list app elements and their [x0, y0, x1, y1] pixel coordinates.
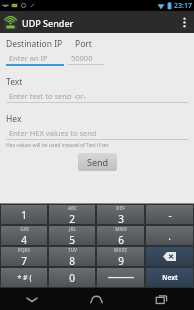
staticText: .	[168, 229, 171, 243]
staticText: WXYZ	[114, 247, 127, 253]
staticText: JKL	[69, 226, 76, 232]
button[interactable]: * # (	[1, 268, 47, 287]
button[interactable]: Send	[78, 153, 117, 171]
staticText: 1	[21, 208, 27, 222]
staticText: GHI	[20, 226, 29, 232]
staticText: Port	[75, 38, 92, 50]
button[interactable]: Home	[64, 288, 129, 310]
staticText: 9	[118, 254, 124, 266]
button[interactable]: Enter HEX values to send	[6, 127, 188, 140]
staticText: 23:17	[174, 1, 192, 11]
button[interactable]: 50000	[68, 52, 104, 65]
staticText: 0	[69, 271, 75, 285]
button[interactable]: WXYZ	[97, 247, 144, 266]
staticText: Hex values will be used instead of Text …	[6, 142, 109, 149]
staticText: 7	[21, 254, 27, 266]
staticText: TUV	[68, 247, 77, 253]
staticText: Next	[162, 273, 178, 282]
button[interactable]: More options	[174, 12, 194, 32]
button[interactable]: Enter text to send -or-	[6, 90, 188, 103]
button[interactable]: TUV	[49, 247, 95, 266]
button[interactable]: GHI	[1, 226, 47, 245]
button[interactable]: -	[146, 205, 193, 224]
button[interactable]: Space	[97, 268, 144, 287]
button[interactable]: ABC	[49, 205, 95, 224]
staticText: 3	[118, 212, 124, 224]
staticText: MNO	[115, 226, 127, 232]
button[interactable]: Hide keyboard	[0, 288, 64, 310]
staticText: Destination IP	[6, 38, 63, 50]
staticText: Send	[87, 156, 109, 168]
button[interactable]: .	[146, 226, 193, 245]
button[interactable]: 1	[1, 205, 47, 224]
button[interactable]: Recent apps	[129, 288, 194, 310]
button[interactable]: PQRS	[1, 247, 47, 266]
button[interactable]: 0	[49, 268, 95, 287]
staticText: ABC	[68, 205, 77, 211]
staticText: Enter HEX values to send	[9, 128, 97, 138]
staticText: PQRS	[18, 247, 30, 253]
button[interactable]: DEF	[97, 205, 144, 224]
staticText: Enter text to send -or-	[9, 91, 86, 101]
button[interactable]: MNO	[97, 226, 144, 245]
staticText: * # (	[17, 273, 32, 283]
staticText: Hex	[6, 113, 22, 125]
button[interactable]: Enter an IP	[6, 52, 64, 66]
staticText: Text	[6, 76, 23, 88]
button[interactable]: Next	[146, 268, 193, 287]
staticText: 6	[118, 233, 124, 245]
staticText: 8	[69, 254, 75, 266]
staticText: 5	[69, 233, 75, 245]
staticText: UDP Sender	[22, 17, 74, 29]
button[interactable]: Backspace	[146, 247, 193, 266]
staticText: Enter an IP	[9, 53, 48, 63]
staticText: -	[168, 208, 172, 222]
staticText: 50000	[71, 53, 93, 63]
staticText: 2	[69, 212, 75, 224]
button[interactable]: JKL	[49, 226, 95, 245]
staticText: DEF	[116, 205, 125, 211]
staticText: 4	[21, 233, 27, 245]
